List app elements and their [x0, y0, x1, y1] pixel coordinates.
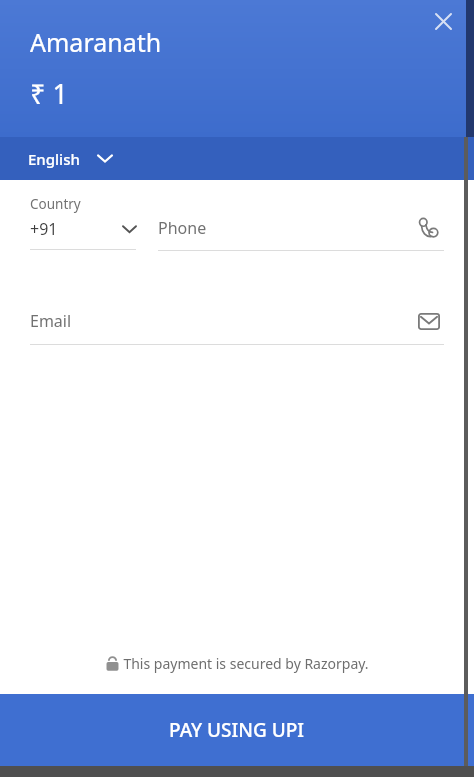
staticText: +91	[30, 218, 58, 240]
button[interactable]: Close	[426, 4, 460, 38]
staticText: PAY USING UPI	[169, 717, 305, 743]
staticText: Country	[30, 195, 81, 213]
other: Phone	[414, 213, 444, 243]
button[interactable]: English	[0, 137, 474, 180]
staticText: Phone	[158, 217, 207, 239]
staticText: Email	[30, 310, 72, 332]
staticText: English	[28, 149, 80, 169]
button[interactable]: Country	[30, 195, 136, 250]
staticText: ₹ 1	[30, 75, 68, 112]
staticText: This payment is secured by Razorpay.	[123, 654, 369, 673]
button[interactable]: PAY USING UPI	[0, 694, 474, 766]
staticText: Amaranath	[30, 25, 162, 59]
other: Email	[414, 306, 444, 336]
button[interactable]: Email	[30, 306, 444, 345]
button[interactable]: Phone	[158, 195, 444, 251]
